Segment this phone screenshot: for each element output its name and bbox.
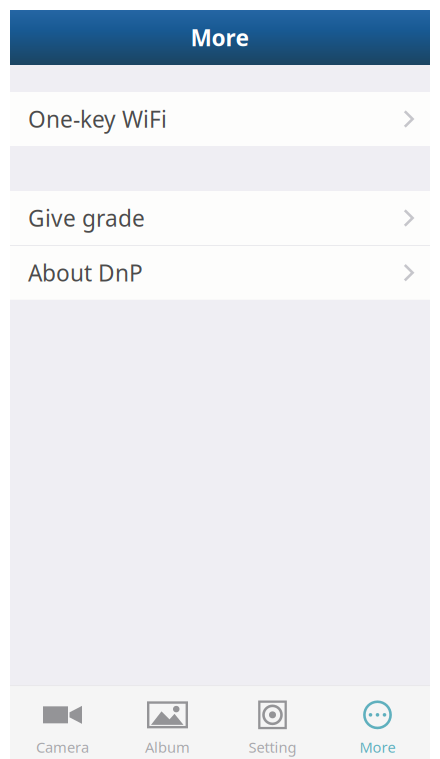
- staticText: Setting: [248, 737, 296, 757]
- button[interactable]: Give grade: [10, 191, 430, 245]
- staticText: Album: [145, 737, 190, 757]
- button[interactable]: One-key WiFi: [10, 92, 430, 146]
- button[interactable]: More: [325, 686, 430, 759]
- staticText: Camera: [36, 737, 89, 757]
- button[interactable]: Camera: [10, 686, 115, 759]
- staticText: About DnP: [28, 258, 143, 288]
- button[interactable]: About DnP: [10, 246, 430, 300]
- staticText: Give grade: [28, 203, 145, 233]
- staticText: More: [359, 737, 395, 757]
- staticText: More: [190, 22, 249, 52]
- button[interactable]: Setting: [220, 686, 325, 759]
- button[interactable]: Album: [115, 686, 220, 759]
- staticText: One-key WiFi: [28, 104, 167, 134]
